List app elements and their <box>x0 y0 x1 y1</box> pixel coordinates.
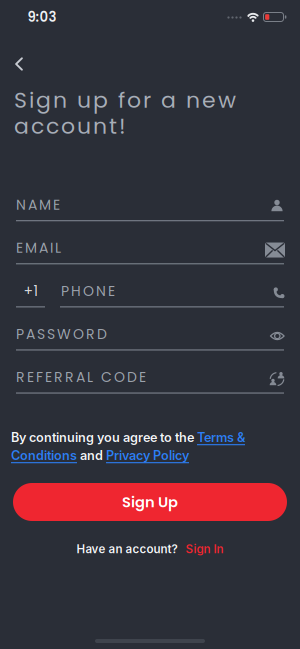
staticText: R E F E R R A L C O D E <box>16 367 146 387</box>
staticText: Sign Up <box>122 492 178 512</box>
staticText: 9:03 <box>27 8 56 26</box>
button[interactable]: P A S S W O R D <box>16 315 284 351</box>
button[interactable]: +1 <box>16 272 284 308</box>
staticText: E M A I L <box>16 238 61 258</box>
button[interactable]: Sign In <box>185 542 223 556</box>
staticText: +1 <box>23 281 37 301</box>
staticText: Conditions <box>11 448 77 463</box>
staticText: S i g n u p f o r a n e w <box>14 85 236 115</box>
staticText: P H O N E <box>61 281 115 301</box>
staticText: By continuing you agree to the <box>11 430 197 445</box>
button[interactable]: R E F E R R A L C O D E <box>16 358 284 394</box>
staticText: Terms & <box>197 430 245 445</box>
button[interactable]: Privacy Policy <box>106 448 189 463</box>
button[interactable]: Conditions <box>11 448 77 463</box>
button[interactable]: E M A I L <box>16 229 284 265</box>
staticText: P A S S W O R D <box>16 324 107 344</box>
staticText: a c c o u n t ! <box>14 111 126 141</box>
button[interactable]: Terms & <box>197 430 245 445</box>
button[interactable]: Sign Up <box>13 483 287 521</box>
staticText: Have an account? <box>76 542 177 556</box>
button[interactable]: N A M E <box>16 186 284 222</box>
staticText: and <box>77 448 106 463</box>
button[interactable]: Back <box>0 42 41 86</box>
staticText: N A M E <box>16 195 60 215</box>
staticText: Sign In <box>185 542 223 556</box>
staticText: Privacy Policy <box>106 448 189 463</box>
